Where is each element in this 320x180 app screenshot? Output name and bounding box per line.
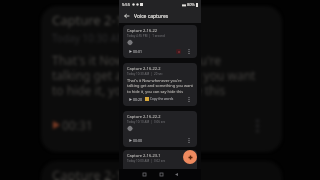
staticText: Capture 2-16-22-2 (52, 11, 162, 29)
button[interactable]: Play (127, 137, 133, 143)
button[interactable]: Back (138, 169, 150, 180)
staticText: 00:31 (62, 117, 93, 133)
staticText: 00:01 (133, 49, 142, 54)
staticText: Capture 2-16-22-2 (127, 114, 161, 119)
button[interactable]: Capture 2-16-22-2 (123, 63, 197, 106)
staticText: 00:00 (133, 138, 142, 143)
button[interactable]: More options (185, 95, 193, 103)
staticText: Today 10:00 AM | 0:02 sec (127, 159, 166, 163)
staticText: 5:55 (122, 2, 130, 7)
button[interactable]: Stop recording (176, 49, 181, 54)
staticText: Capture 2-16-22 (127, 28, 158, 33)
staticText: Capture 2-16-23-1 (127, 153, 161, 158)
staticText: Capture 2-16-22-2 (127, 66, 161, 71)
button[interactable]: New voice capture (183, 150, 197, 164)
button[interactable]: Play (127, 48, 133, 54)
button[interactable]: Recents (170, 169, 182, 180)
button[interactable]: More options (185, 136, 193, 144)
button[interactable]: Home (155, 169, 167, 180)
staticText: Today 10:30 AM | 20 sec (127, 72, 163, 76)
button[interactable]: More options (185, 47, 193, 55)
staticText: 80% (187, 2, 195, 7)
staticText: That's it Now whenever you're talking ge… (127, 78, 193, 95)
staticText: That's it Now whenever you're talking ge… (52, 52, 256, 98)
button[interactable]: Capture 2-16-22-2 (123, 111, 197, 147)
staticText: 00:20 (133, 97, 142, 102)
button[interactable]: Capture 2-16-22 (123, 25, 197, 58)
staticText: Today 10:30 AM | 20 sec (52, 31, 172, 45)
button[interactable]: Capture 2-16-23-1 (123, 150, 197, 180)
staticText: Voice captures (134, 13, 169, 20)
staticText: Capture 2-16-22-3 (52, 166, 162, 180)
button[interactable]: Back (122, 11, 132, 21)
staticText: Today 4:55 PM | 1 second (127, 34, 165, 38)
staticText: Copy the words (150, 97, 174, 101)
staticText: Today 10:10 AM | 0:06 sec (127, 120, 166, 124)
button[interactable]: Play (127, 96, 133, 102)
